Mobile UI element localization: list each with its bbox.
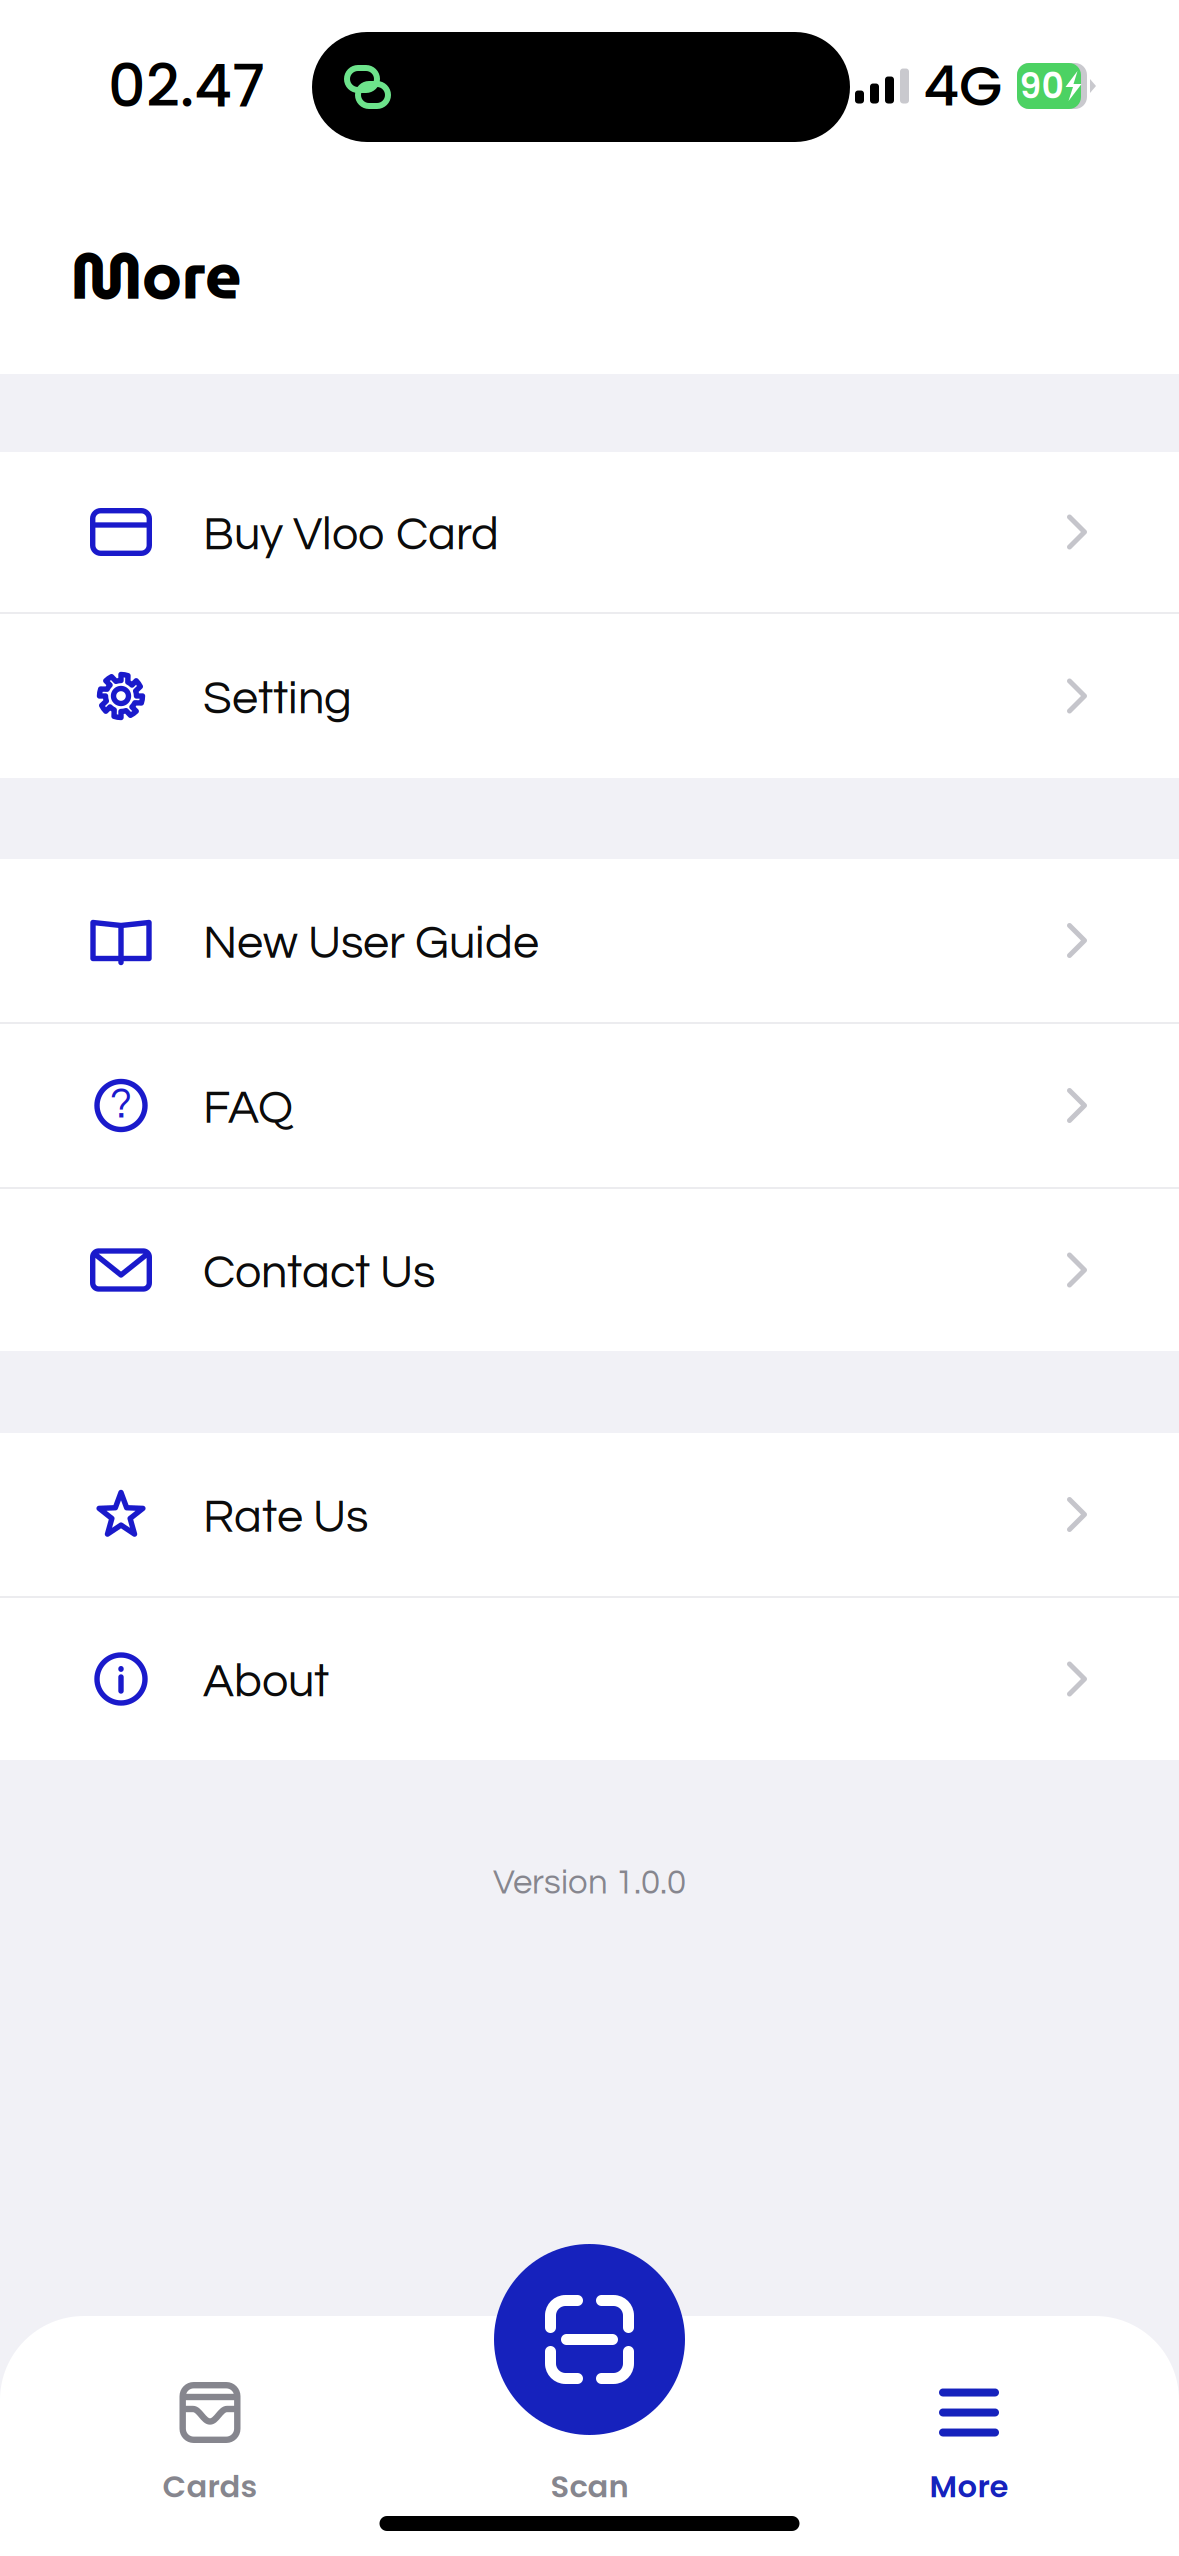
staticText: ? [110,1082,132,1126]
staticText: Setting [203,675,352,723]
staticText: Cards [162,2465,257,2508]
staticText: More [929,2465,1008,2508]
staticText: Contact Us [203,1249,435,1297]
button[interactable]: ? [0,1024,1179,1189]
button[interactable]: Buy Vloo Card [0,452,1179,614]
button[interactable]: Setting [0,614,1179,778]
button[interactable]: New User Guide [0,859,1179,1024]
button[interactable]: Cards [90,2382,330,2508]
button[interactable]: Scan [469,2382,709,2508]
staticText: FAQ [203,1084,293,1133]
staticText: 90 [1019,62,1063,110]
staticText: New User Guide [203,919,539,968]
staticText: Scan [550,2465,628,2508]
staticText: 4G [923,47,1002,125]
button[interactable]: Contact Us [0,1189,1179,1351]
button[interactable]: About [0,1598,1179,1760]
staticText: More [71,225,241,327]
button[interactable]: Scan [494,2244,685,2435]
staticText: Rate Us [203,1493,368,1542]
staticText: About [203,1658,329,1706]
staticText: Version 1.0.0 [493,1865,686,1901]
staticText: Buy Vloo Card [203,511,499,559]
button[interactable]: Rate Us [0,1433,1179,1598]
staticText: 02.47 [108,45,265,127]
button[interactable]: More [849,2382,1089,2508]
